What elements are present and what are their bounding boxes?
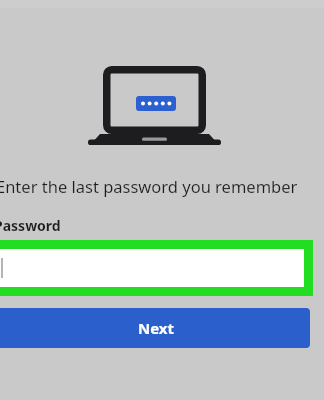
staticText: Enter the last password you remember xyxy=(0,175,298,197)
staticText: Password xyxy=(0,216,61,235)
button[interactable]: Next xyxy=(0,308,310,348)
button[interactable]: Password field xyxy=(0,240,313,296)
staticText: Next xyxy=(138,318,175,338)
